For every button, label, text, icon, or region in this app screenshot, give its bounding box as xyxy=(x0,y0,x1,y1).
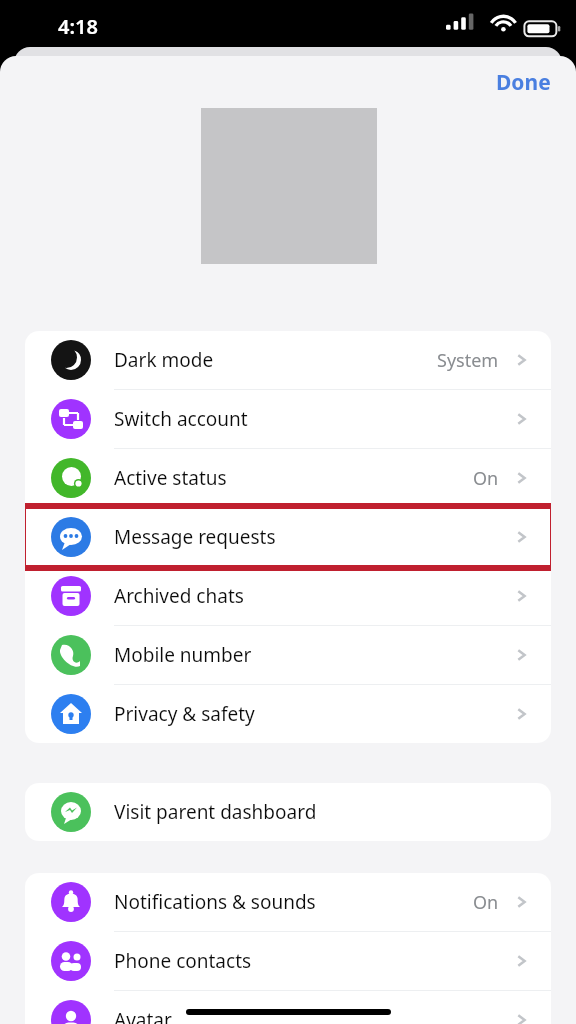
button[interactable]: Phone contacts xyxy=(25,932,551,990)
other: Visit parent dashboard xyxy=(51,792,91,832)
staticText: Active status xyxy=(114,465,227,491)
staticText: Archived chats xyxy=(114,583,244,609)
button[interactable]: Active status xyxy=(25,449,551,507)
staticText: Switch account xyxy=(114,406,248,432)
other: Phone contacts xyxy=(51,941,91,981)
staticText: Mobile number xyxy=(114,642,252,668)
button[interactable]: Archived chats xyxy=(25,567,551,625)
staticText: 4:18 xyxy=(58,13,98,40)
staticText: Done xyxy=(496,68,551,97)
other: Message requests xyxy=(51,517,91,557)
staticText: Dark mode xyxy=(114,347,214,373)
staticText: Notifications & sounds xyxy=(114,889,316,915)
button[interactable]: Notifications and sounds xyxy=(25,873,551,931)
other: Active status xyxy=(51,458,91,498)
other: Privacy and safety xyxy=(51,694,91,734)
staticText: Visit parent dashboard xyxy=(114,799,317,825)
button[interactable]: Privacy and safety xyxy=(25,685,551,743)
staticText: Avatar xyxy=(114,1007,172,1024)
staticText: Privacy & safety xyxy=(114,701,255,727)
staticText: System xyxy=(437,348,499,373)
staticText: On xyxy=(473,466,499,491)
button[interactable]: Avatar xyxy=(25,991,551,1024)
button[interactable]: Visit parent dashboard xyxy=(25,783,551,841)
other: Dark mode xyxy=(51,340,91,380)
button[interactable]: Dark mode xyxy=(25,331,551,389)
staticText: On xyxy=(473,890,499,915)
other: Mobile number xyxy=(51,635,91,675)
staticText: Phone contacts xyxy=(114,948,252,974)
other: Switch account xyxy=(51,399,91,439)
button[interactable]: Mobile number xyxy=(25,626,551,684)
other: Notifications and sounds xyxy=(51,882,91,922)
other: Archived chats xyxy=(51,576,91,616)
button[interactable]: Done xyxy=(471,58,576,107)
button[interactable]: Switch account xyxy=(25,390,551,448)
button[interactable]: Message requests xyxy=(25,508,551,566)
other: Avatar xyxy=(51,1000,91,1024)
staticText: Message requests xyxy=(114,524,276,550)
